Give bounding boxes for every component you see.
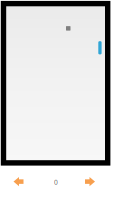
button[interactable]: Move right (80, 172, 100, 191)
staticText: 0 (54, 178, 58, 187)
button[interactable]: Move left (8, 172, 28, 191)
